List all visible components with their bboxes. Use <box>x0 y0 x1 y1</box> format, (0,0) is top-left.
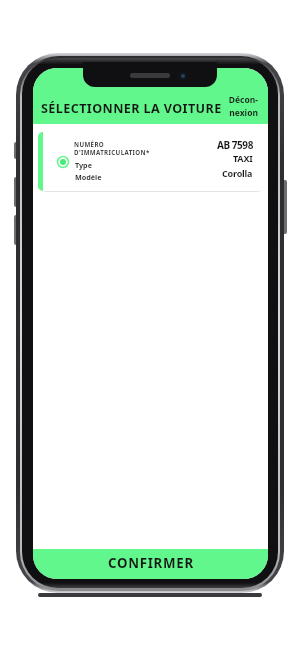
button[interactable]: NUMÉRO D'IMMATRICULATION* <box>38 132 264 191</box>
staticText: Modèle <box>75 172 102 182</box>
staticText: Type <box>75 160 92 170</box>
staticText: Décon- nexion <box>228 94 258 119</box>
staticText: NUMÉRO D'IMMATRICULATION* <box>74 140 150 156</box>
staticText: Corolla <box>222 167 253 179</box>
staticText: SÉLECTIONNER LA VOITURE <box>41 100 222 117</box>
staticText: AB 7598 <box>217 138 253 150</box>
staticText: TAXI <box>233 152 253 164</box>
staticText: CONFIRMER <box>108 554 194 572</box>
button[interactable]: Décon- nexion <box>183 93 258 120</box>
button[interactable]: CONFIRMER <box>33 549 268 579</box>
